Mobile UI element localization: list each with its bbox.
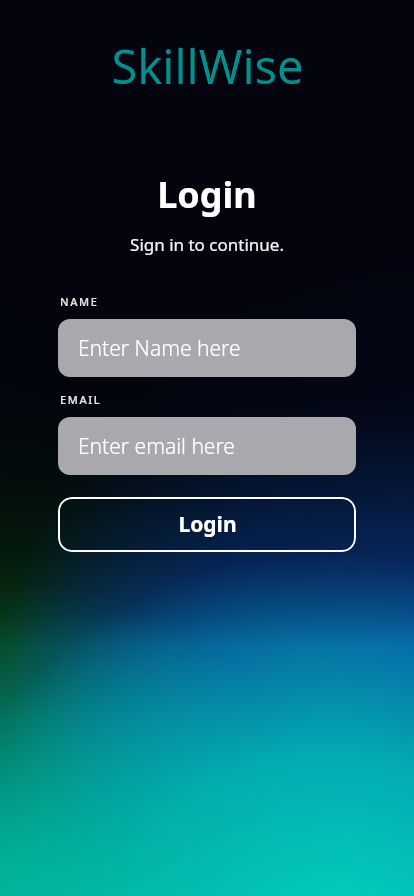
staticText: NAME [60,294,99,309]
button[interactable]: Enter email here [58,417,356,475]
button[interactable]: Enter Name here [58,319,356,377]
staticText: SkillWise [111,34,304,98]
staticText: Sign in to continue. [130,233,284,256]
staticText: Enter email here [78,432,235,461]
staticText: Login [178,510,237,539]
staticText: Enter Name here [78,334,241,363]
staticText: Login [157,170,257,219]
button[interactable]: Login [58,497,356,552]
staticText: EMAIL [60,392,102,407]
